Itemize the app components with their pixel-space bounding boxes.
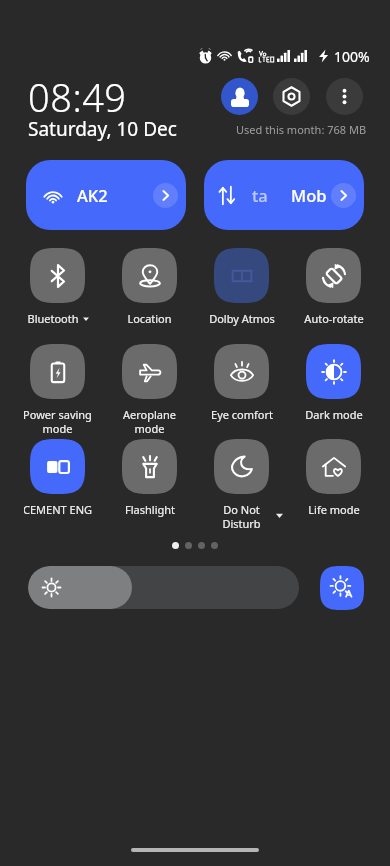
button[interactable]: Brightness <box>28 566 299 609</box>
staticText: ENHANCEMENT ENGINE <box>24 502 92 516</box>
button[interactable]: User profile <box>221 78 258 115</box>
button[interactable]: Mobile data <box>204 160 364 230</box>
staticText: Auto-rotate <box>304 311 364 326</box>
staticText: Dark mode <box>305 407 363 422</box>
staticText: Do Not Disturb <box>222 502 261 531</box>
button[interactable]: Do Not Disturb <box>196 439 287 531</box>
staticText: Saturday, 10 Dec <box>28 116 177 142</box>
button[interactable]: Dark mode <box>288 344 379 422</box>
staticText: Aeroplane mode <box>123 407 176 436</box>
button[interactable]: Dolby Atmos <box>196 248 287 326</box>
button[interactable]: Auto-rotate <box>288 248 379 326</box>
staticText: Used this month: 768 MB <box>236 122 367 137</box>
button[interactable]: Automatic brightness <box>320 566 364 610</box>
staticText: Life mode <box>308 502 360 517</box>
button[interactable]: Wi-Fi AK2 <box>26 160 186 230</box>
staticText: Bluetooth <box>27 311 79 326</box>
button[interactable]: More options <box>326 78 363 115</box>
button[interactable]: Bluetooth <box>12 248 103 326</box>
staticText: Flashlight <box>125 502 175 517</box>
button[interactable]: Aeroplane mode <box>104 344 195 436</box>
button[interactable]: Location <box>104 248 195 326</box>
staticText: 08:49 <box>28 71 127 123</box>
staticText: ta <box>252 184 268 206</box>
staticText: Power saving mode <box>23 407 92 436</box>
button[interactable]: Flashlight <box>104 439 195 517</box>
staticText: Eye comfort <box>211 407 273 422</box>
button[interactable]: Eye comfort <box>196 344 287 422</box>
button[interactable]: Life mode <box>288 439 379 517</box>
staticText: AK2 <box>77 184 108 206</box>
staticText: Dolby Atmos <box>209 311 275 326</box>
button[interactable]: Power saving mode <box>12 344 103 436</box>
staticText: Location <box>127 311 172 326</box>
button[interactable]: ENHANCEMENT ENGINE <box>12 439 103 516</box>
staticText: Mob <box>291 184 327 206</box>
staticText: 100% <box>334 47 370 66</box>
button[interactable]: Settings <box>273 78 310 115</box>
